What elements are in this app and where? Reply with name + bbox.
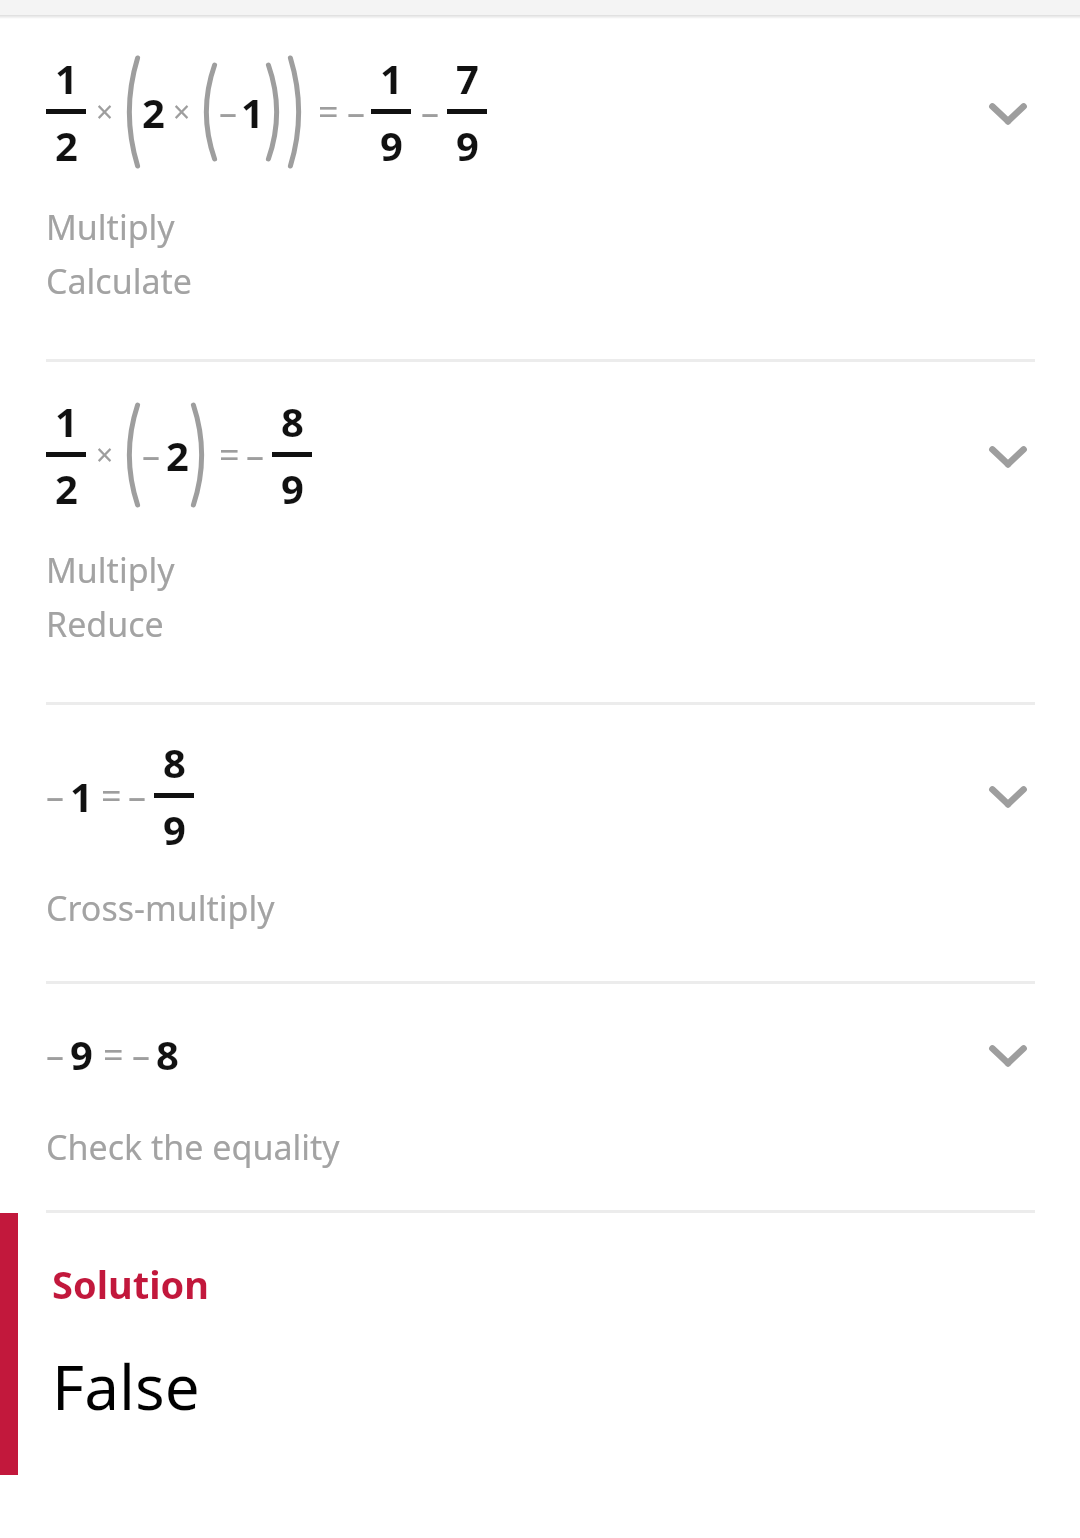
button[interactable]: Expand step 2: [960, 407, 1056, 503]
staticText: 9: [281, 461, 304, 515]
button[interactable]: Expand step 4: [960, 1006, 1056, 1102]
staticText: –: [421, 87, 439, 136]
staticText: Multiply: [46, 547, 175, 593]
staticText: 8: [163, 735, 186, 789]
button[interactable]: 1: [0, 362, 1080, 547]
staticText: 8: [281, 394, 304, 448]
staticText: –: [142, 430, 160, 479]
button[interactable]: –: [0, 984, 1080, 1124]
staticText: Cross-multiply: [46, 885, 275, 931]
button[interactable]: –: [0, 705, 1080, 885]
staticText: False: [52, 1344, 200, 1428]
staticText: 2: [166, 428, 189, 482]
staticText: 1: [380, 51, 403, 105]
staticText: 2: [55, 118, 78, 172]
staticText: =: [318, 87, 339, 136]
staticText: ×: [96, 91, 114, 132]
staticText: Solution: [52, 1258, 210, 1310]
staticText: 9: [456, 118, 479, 172]
staticText: 1: [55, 51, 78, 105]
staticText: =: [101, 771, 122, 820]
staticText: ×: [96, 434, 114, 475]
staticText: =: [103, 1030, 124, 1079]
staticText: 1: [241, 85, 264, 139]
staticText: –: [128, 771, 146, 820]
staticText: 2: [55, 461, 78, 515]
staticText: –: [46, 1030, 64, 1079]
staticText: Reduce: [46, 601, 164, 647]
staticText: 9: [163, 802, 186, 856]
staticText: Multiply: [46, 204, 175, 250]
staticText: –: [132, 1030, 150, 1079]
staticText: 8: [156, 1027, 179, 1081]
staticText: 9: [380, 118, 403, 172]
button[interactable]: 1: [0, 19, 1080, 204]
staticText: –: [246, 430, 264, 479]
button[interactable]: Expand step 3: [960, 747, 1056, 843]
button[interactable]: Expand step 1: [960, 64, 1056, 160]
staticText: 9: [70, 1027, 93, 1081]
staticText: Calculate: [46, 258, 192, 304]
staticText: 1: [55, 394, 78, 448]
staticText: –: [347, 87, 365, 136]
staticText: =: [219, 430, 240, 479]
staticText: 7: [456, 51, 479, 105]
staticText: –: [46, 771, 64, 820]
staticText: Check the equality: [46, 1124, 340, 1170]
staticText: –: [219, 87, 237, 136]
staticText: ×: [173, 91, 191, 132]
staticText: 2: [142, 85, 165, 139]
staticText: 1: [70, 769, 93, 823]
